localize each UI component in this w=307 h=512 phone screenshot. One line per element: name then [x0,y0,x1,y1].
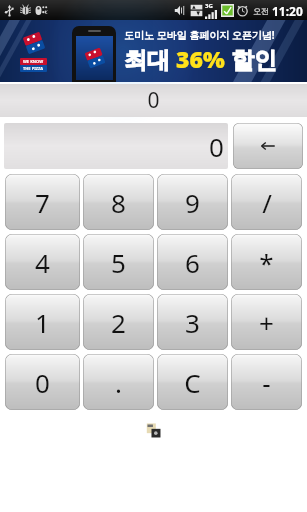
staticText: 7 [35,185,50,220]
staticText: 할인 [225,43,277,74]
staticText: 도미노 모바일 홈페이지 오픈기념! [124,28,275,42]
staticText: THE PIZZA [23,66,44,71]
button[interactable]: 6 [157,234,228,290]
staticText: 2 [111,305,126,340]
staticText: 9 [185,185,200,220]
staticText: * [259,245,274,280]
button[interactable]: Advertisement: Domino's Pizza discount [0,20,307,82]
staticText: - [262,365,271,400]
button[interactable]: 3 [157,294,228,350]
button[interactable]: 7 [5,174,80,230]
button[interactable]: C [157,354,228,410]
button[interactable]: 4 [5,234,80,290]
staticText: 0 [35,365,50,400]
staticText: WE KNOW [23,59,44,64]
staticText: 6 [185,245,200,280]
staticText: 0 [147,86,160,115]
button[interactable]: 9 [157,174,228,230]
staticText: 11:20 [272,3,303,19]
staticText: 8 [111,185,126,220]
staticText: 오전 [253,6,269,16]
button[interactable]: Ad info [145,422,163,440]
button[interactable]: 1 [5,294,80,350]
staticText: 3G [205,2,213,10]
staticText: + [259,305,274,340]
button[interactable]: / [231,174,302,230]
staticText: 3 [185,305,200,340]
button[interactable]: 2 [83,294,154,350]
staticText: / [262,185,272,220]
button[interactable]: * [231,234,302,290]
button[interactable]: + [231,294,302,350]
staticText: 4 [35,245,50,280]
staticText: C [184,365,201,400]
button[interactable]: Backspace [233,123,303,169]
button[interactable]: 0 [5,354,80,410]
button[interactable]: 5 [83,234,154,290]
staticText: . [115,365,122,400]
staticText: 36% [176,43,225,74]
button[interactable]: 8 [83,174,154,230]
button[interactable]: . [83,354,154,410]
button[interactable]: 0 [4,123,228,169]
staticText: 1 [35,305,50,340]
staticText: 최대 [124,43,176,74]
staticText: 0 [209,129,224,164]
staticText: 5 [111,245,126,280]
button[interactable]: - [231,354,302,410]
